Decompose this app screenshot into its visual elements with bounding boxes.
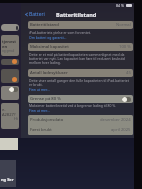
staticText: 100 % <box>119 44 131 50</box>
staticText: Maksimal kapasitet <box>30 44 69 50</box>
staticText: Produksjonsdato <box>30 117 64 123</box>
button[interactable]: e-A2827? <box>1 103 19 129</box>
staticText: desember 2024 <box>100 117 131 123</box>
button[interactable]: Søk <box>1 24 19 31</box>
button[interactable] <box>1 69 19 83</box>
staticText: Batteri <box>29 11 45 18</box>
button[interactable]: Maksimal kapasitet <box>28 43 133 51</box>
button[interactable]: Produksjonsdato <box>28 115 133 125</box>
other: Bryter <box>9 87 18 92</box>
staticText: 45 <box>126 70 131 76</box>
button[interactable]: Bryter <box>1 86 19 100</box>
staticText: iPad-batteriets ytelse er som forventet. <box>29 30 91 35</box>
button[interactable]: Grense på 80 prosent <box>122 97 131 102</box>
staticText: Hi <box>14 116 18 121</box>
staticText: Finn ut mer... <box>29 108 50 113</box>
button[interactable]: Antall ladesykluser <box>28 69 133 77</box>
button[interactable]: Grense på 80 % <box>28 95 133 103</box>
staticText: Dette viser antall ganger den fulle kapa… <box>29 78 130 87</box>
staticText: Batteritilstand <box>56 11 97 18</box>
staticText: Normal <box>116 22 131 28</box>
staticText: Først brukt <box>30 127 52 133</box>
staticText: e-A2827? <box>2 107 18 117</box>
staticText: april 2025 <box>111 127 131 133</box>
button[interactable]: tjenesten <box>1 35 19 56</box>
button[interactable]: Først brukt <box>28 125 133 135</box>
staticText: Dette er et mål på batterikapasiteten sa… <box>29 52 130 65</box>
staticText: Batteritilstand <box>30 22 59 28</box>
staticText: 84 % <box>116 3 125 8</box>
staticText: og gmail <box>2 49 15 53</box>
button[interactable]: Batteri <box>24 11 45 18</box>
staticText: Grense på 80 % <box>30 96 61 102</box>
staticText: Om batteri og garanti... <box>29 35 67 40</box>
button[interactable]: Batteritilstand <box>28 21 133 29</box>
staticText: ng Ser <box>1 177 14 182</box>
staticText: tjenesten <box>2 39 18 49</box>
staticText: Antall ladesykluser <box>30 70 68 76</box>
staticText: Maksimer batterilevetid ved å begrense l… <box>29 103 117 108</box>
button[interactable] <box>1 59 19 65</box>
staticText: Finn ut mer... <box>29 87 50 92</box>
